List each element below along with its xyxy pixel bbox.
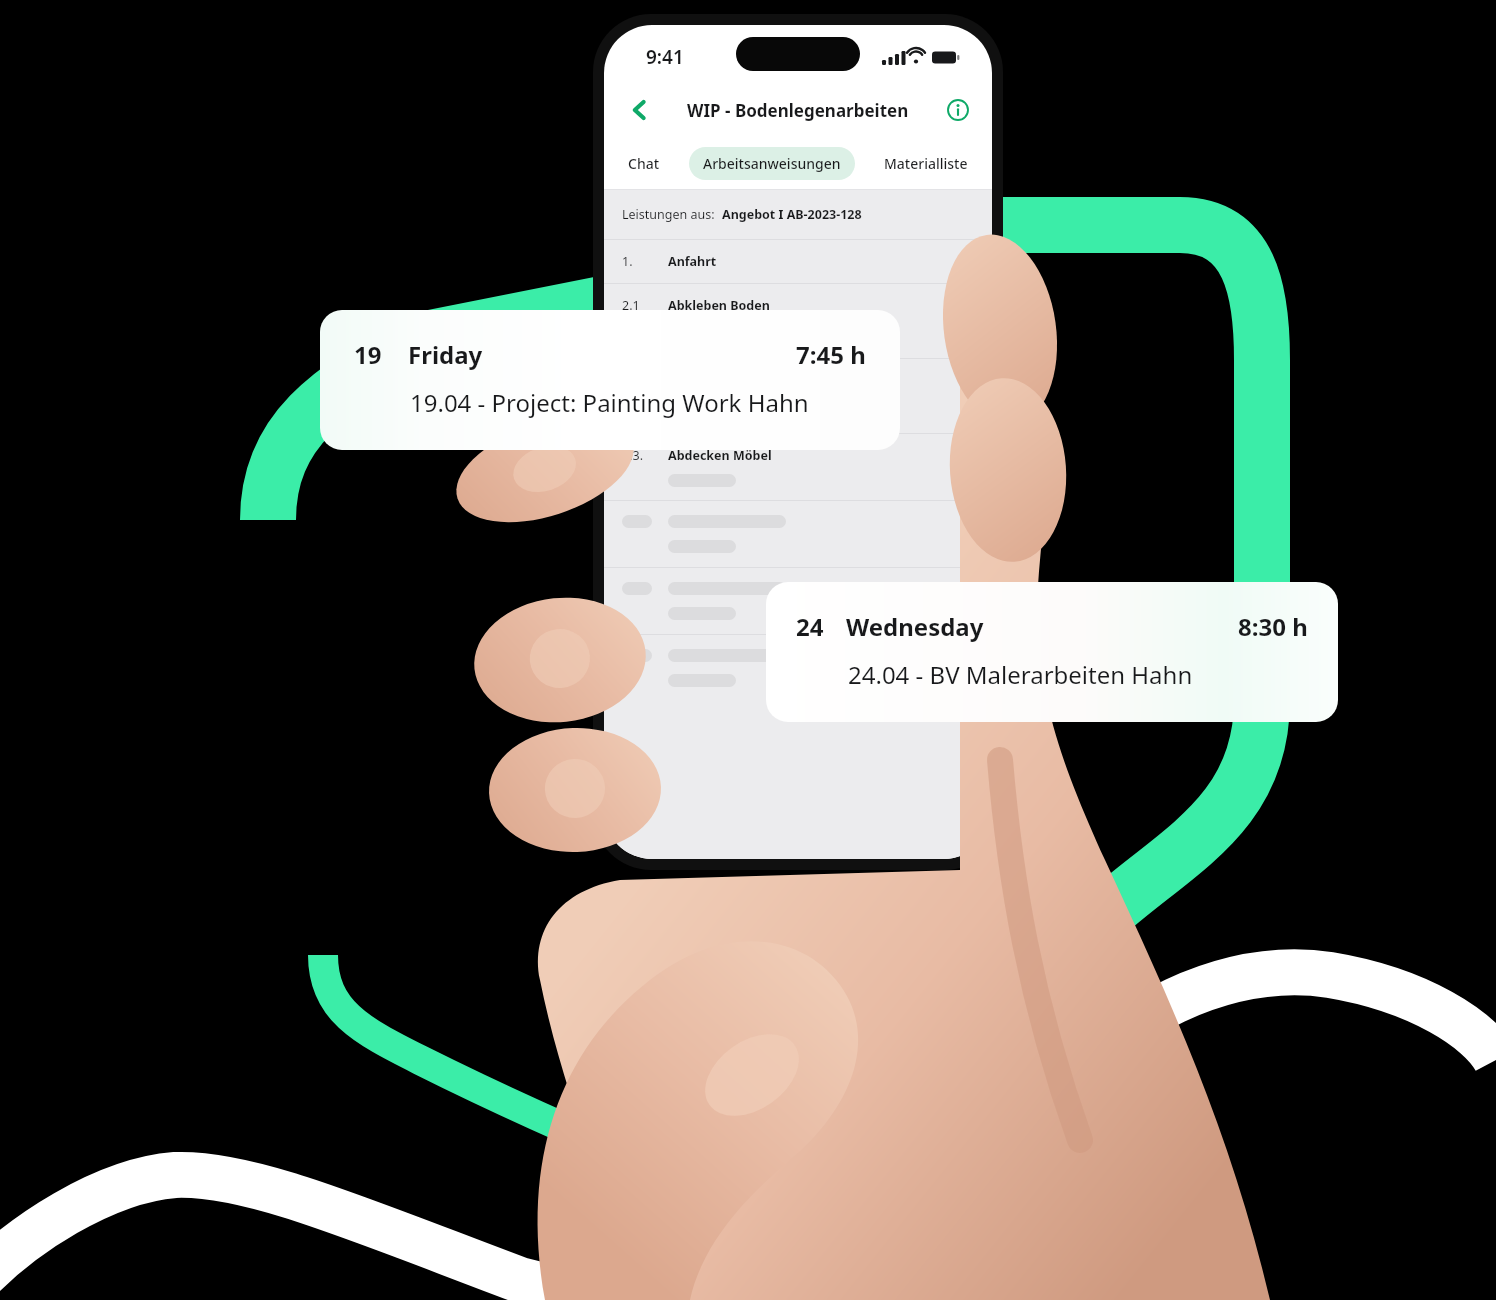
button[interactable]: Arbeitsanweisungen xyxy=(689,147,855,180)
staticText: 19 xyxy=(354,338,382,371)
button[interactable]: Chat xyxy=(614,147,674,180)
staticText: Abkleben Boden xyxy=(668,297,770,314)
staticText: 9:41 xyxy=(646,44,684,70)
staticText: 2.1 xyxy=(622,297,640,314)
staticText: Chat xyxy=(628,154,660,173)
button[interactable]: 2.3. xyxy=(604,434,992,500)
staticText: 19.04 - Project: Painting Work Hahn xyxy=(410,386,809,419)
staticText: Friday xyxy=(408,338,483,371)
staticText: Angebot I AB-2023-128 xyxy=(722,206,862,223)
button[interactable]: 24 xyxy=(766,582,1338,722)
staticText: Wednesday xyxy=(846,610,984,643)
staticText: Materialliste xyxy=(884,154,968,173)
button[interactable]: Back xyxy=(618,88,662,132)
staticText: 2.3. xyxy=(622,447,644,464)
staticText: 7:45 h xyxy=(796,338,866,371)
staticText: Arbeitsanweisungen xyxy=(703,154,841,173)
button[interactable]: Info xyxy=(938,90,978,130)
staticText: Anfahrt xyxy=(668,253,717,270)
staticText: Abdecken Möbel xyxy=(668,447,772,464)
staticText: 24 xyxy=(796,610,824,643)
staticText: 24.04 - BV Malerarbeiten Hahn xyxy=(848,658,1193,691)
staticText: 8:30 h xyxy=(1238,610,1308,643)
button[interactable]: 2.1 xyxy=(604,284,992,358)
button[interactable]: 19 xyxy=(320,310,900,450)
staticText: 1,00 Stk. xyxy=(680,401,724,416)
button[interactable]: 1. xyxy=(604,240,992,283)
staticText: 1. xyxy=(622,253,633,270)
button[interactable]: Materialliste xyxy=(870,147,982,180)
button[interactable]: 2.2. xyxy=(604,359,992,433)
staticText: WIP - Bodenlegenarbeiten xyxy=(687,99,909,122)
staticText: Leistungen aus: xyxy=(622,206,718,223)
